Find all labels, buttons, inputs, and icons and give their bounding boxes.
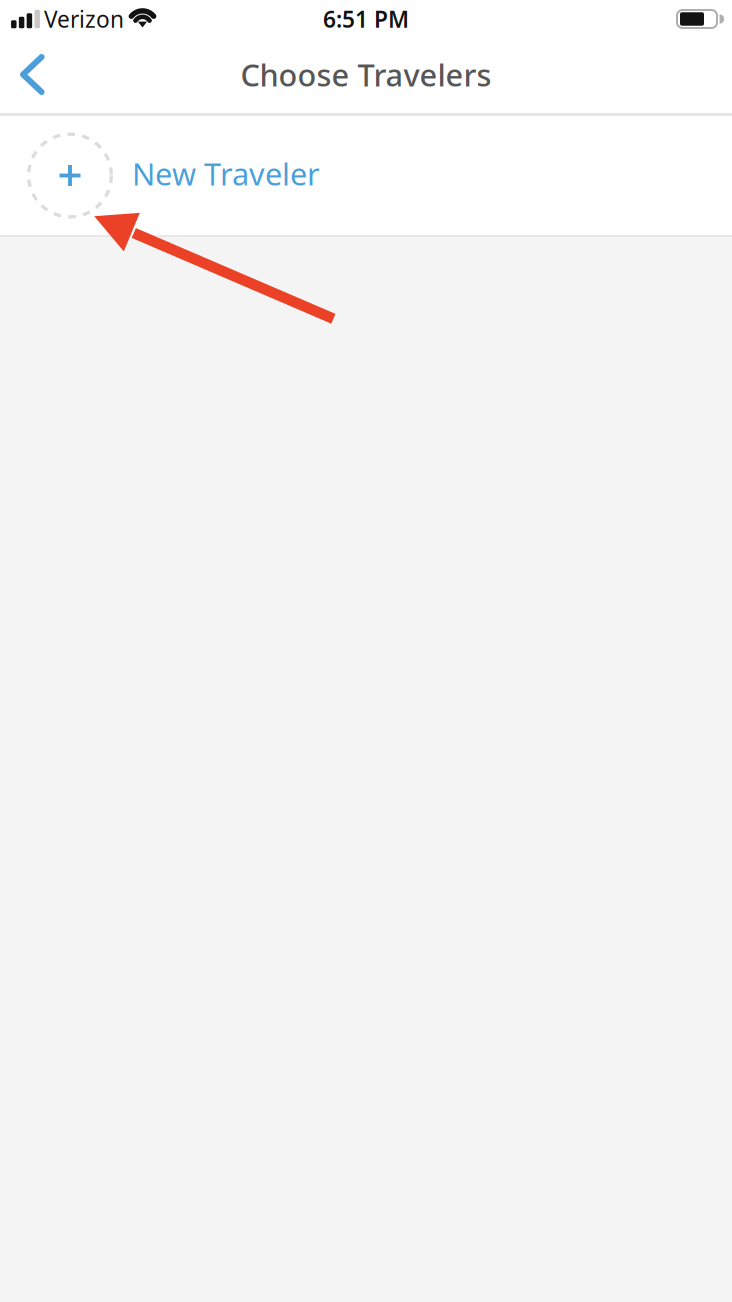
staticText: Verizon [44,4,124,34]
button[interactable]: Back [0,36,65,117]
staticText: Choose Travelers [240,54,491,95]
staticText: 6:51 PM [323,4,409,34]
button[interactable]: New Traveler [0,116,732,235]
staticText: New Traveler [132,153,320,194]
